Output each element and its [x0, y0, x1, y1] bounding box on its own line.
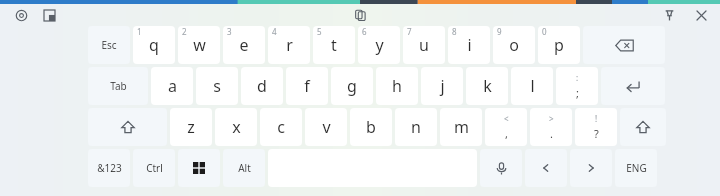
button[interactable]: Shift: [620, 108, 666, 146]
button[interactable]: >: [530, 108, 572, 146]
button[interactable]: Emoji: [40, 6, 58, 24]
staticText: ?: [594, 126, 599, 141]
staticText: j: [440, 75, 445, 97]
button[interactable]: Settings: [12, 6, 30, 24]
staticText: ,: [505, 126, 508, 141]
staticText: 3: [227, 26, 232, 37]
staticText: <: [504, 113, 509, 124]
staticText: 7: [407, 26, 412, 37]
button[interactable]: Pin keyboard: [660, 6, 678, 24]
button[interactable]: n: [395, 108, 437, 146]
button[interactable]: i: [448, 26, 490, 64]
staticText: r: [286, 34, 293, 56]
staticText: 8: [452, 26, 457, 37]
staticText: l: [530, 75, 535, 97]
staticText: v: [322, 116, 331, 138]
staticText: x: [232, 116, 241, 138]
staticText: 1: [137, 26, 142, 37]
staticText: k: [483, 75, 492, 97]
button[interactable]: <: [485, 108, 527, 146]
button[interactable]: o: [493, 26, 535, 64]
button[interactable]: k: [466, 67, 508, 105]
button[interactable]: d: [241, 67, 283, 105]
staticText: a: [168, 75, 177, 97]
button[interactable]: b: [350, 108, 392, 146]
staticText: w: [193, 34, 206, 56]
staticText: u: [419, 34, 429, 56]
button[interactable]: Tab: [88, 67, 148, 105]
button[interactable]: Voice input: [480, 149, 522, 187]
button[interactable]: Clipboard: [349, 4, 371, 26]
button[interactable]: e: [223, 26, 265, 64]
button[interactable]: u: [403, 26, 445, 64]
button[interactable]: c: [260, 108, 302, 146]
staticText: c: [277, 116, 285, 138]
staticText: t: [331, 34, 337, 56]
staticText: g: [347, 75, 357, 97]
button[interactable]: p: [538, 26, 580, 64]
staticText: i: [467, 34, 472, 56]
button[interactable]: &123: [88, 149, 130, 187]
button[interactable]: Shift: [88, 108, 167, 146]
staticText: 9: [497, 26, 502, 37]
button[interactable]: Esc: [88, 26, 130, 64]
button[interactable]: s: [196, 67, 238, 105]
button[interactable]: Enter: [601, 67, 665, 105]
staticText: &123: [97, 161, 122, 175]
staticText: f: [304, 75, 310, 97]
button[interactable]: x: [215, 108, 257, 146]
button[interactable]: g: [331, 67, 373, 105]
staticText: n: [411, 116, 421, 138]
staticText: ;: [576, 85, 579, 100]
button[interactable]: v: [305, 108, 347, 146]
button[interactable]: h: [376, 67, 418, 105]
button[interactable]: Windows key: [178, 149, 220, 187]
staticText: o: [509, 34, 519, 56]
button[interactable]: w: [178, 26, 220, 64]
staticText: z: [187, 116, 195, 138]
button[interactable]: m: [440, 108, 482, 146]
button[interactable]: Close: [692, 6, 710, 24]
staticText: 0: [542, 26, 547, 37]
staticText: h: [392, 75, 402, 97]
staticText: >: [549, 113, 554, 124]
staticText: 5: [317, 26, 322, 37]
button[interactable]: r: [268, 26, 310, 64]
staticText: :: [576, 72, 579, 83]
staticText: m: [454, 116, 469, 138]
staticText: Alt: [238, 161, 251, 175]
staticText: !: [595, 113, 598, 124]
button[interactable]: j: [421, 67, 463, 105]
button[interactable]: Move cursor left: [525, 149, 567, 187]
button[interactable]: Backspace: [583, 26, 665, 64]
staticText: 6: [362, 26, 367, 37]
staticText: s: [213, 75, 221, 97]
button[interactable]: :: [556, 67, 598, 105]
button[interactable]: z: [170, 108, 212, 146]
staticText: y: [375, 34, 384, 56]
button[interactable]: Alt: [223, 149, 265, 187]
button[interactable]: a: [151, 67, 193, 105]
staticText: Tab: [110, 79, 127, 93]
staticText: q: [149, 34, 159, 56]
button[interactable]: f: [286, 67, 328, 105]
button[interactable]: l: [511, 67, 553, 105]
button[interactable]: Move cursor right: [570, 149, 612, 187]
staticText: 2: [182, 26, 187, 37]
staticText: Ctrl: [146, 161, 163, 175]
button[interactable]: Ctrl: [133, 149, 175, 187]
button[interactable]: q: [133, 26, 175, 64]
button[interactable]: !: [575, 108, 617, 146]
button[interactable]: t: [313, 26, 355, 64]
staticText: b: [366, 116, 376, 138]
staticText: 4: [272, 26, 277, 37]
staticText: .: [550, 126, 553, 141]
staticText: Esc: [101, 38, 117, 52]
button[interactable]: ENG: [615, 149, 657, 187]
staticText: p: [554, 34, 564, 56]
staticText: e: [239, 34, 249, 56]
staticText: d: [257, 75, 267, 97]
button[interactable]: y: [358, 26, 400, 64]
staticText: ENG: [626, 161, 647, 175]
